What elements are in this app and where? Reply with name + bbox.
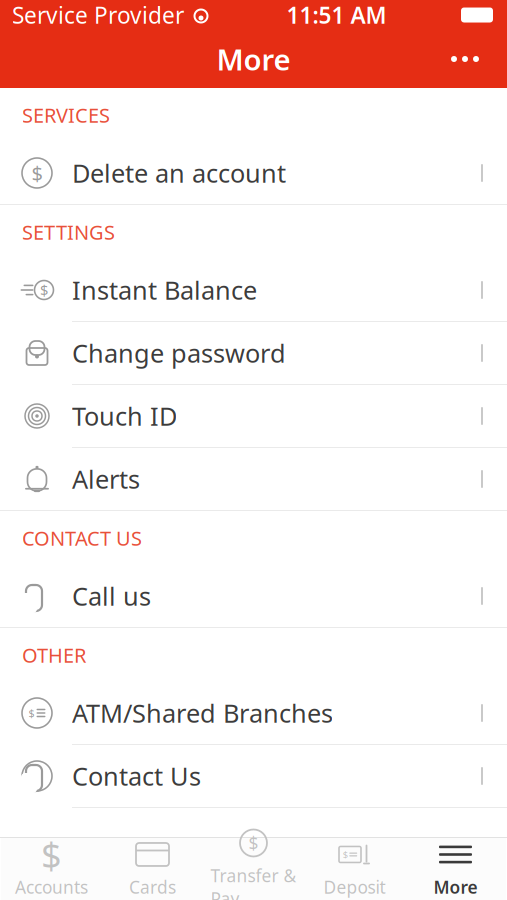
button[interactable]: $ [304,838,405,900]
staticText: Transfer & Pay [210,864,296,900]
button[interactable]: More [405,838,506,900]
staticText: $ [41,831,62,878]
staticText: $ [31,160,42,186]
button[interactable]: More options [435,37,495,81]
staticText: SERVICES [22,102,110,128]
button[interactable]: $ [0,682,507,744]
button[interactable]: $ [0,259,507,321]
staticText: $ [28,706,34,720]
staticText: More [433,875,477,898]
staticText: Instant Balance [72,273,257,307]
staticText: Deposit [323,875,385,898]
staticText: ATM/Shared Branches [72,696,333,730]
staticText: Touch ID [72,399,177,433]
staticText: CONTACT US [22,525,142,551]
staticText: $ [343,848,348,861]
button[interactable]: Cards [102,838,203,900]
staticText: SETTINGS [22,219,115,245]
staticText: Alerts [72,462,140,496]
staticText: Cards [129,875,176,898]
button[interactable]: Contact Us [0,745,507,807]
staticText: Service Provider [12,0,184,30]
button[interactable]: Change password [0,322,507,384]
staticText: $ [248,831,258,854]
button[interactable]: Touch ID [0,385,507,447]
staticText: 11:51 AM [286,0,386,30]
staticText: OTHER [22,642,86,668]
button[interactable]: $ [203,838,304,900]
button[interactable]: $ [1,838,102,900]
staticText: Contact Us [72,759,201,793]
button[interactable]: Alerts [0,448,507,510]
staticText: Accounts [15,875,88,898]
staticText: $ [40,280,48,300]
button[interactable]: Call us [0,565,507,627]
staticText: More [216,39,290,78]
staticText: Delete an account [72,156,286,190]
button[interactable]: $ [0,142,507,204]
staticText: Call us [72,579,151,613]
staticText: Change password [72,336,286,370]
